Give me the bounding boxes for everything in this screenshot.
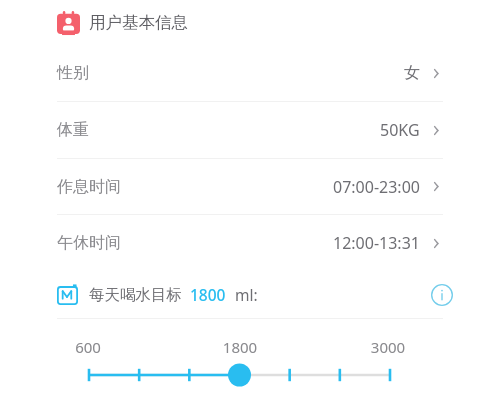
staticText: 1800 xyxy=(213,337,267,357)
button[interactable]: 每天喝水目标 xyxy=(0,271,501,318)
button[interactable]: 午休时间 xyxy=(0,215,501,271)
staticText: 1800 xyxy=(190,284,226,305)
staticText: 性别 xyxy=(57,63,89,83)
staticText: 3000 xyxy=(361,337,415,357)
staticText: 体重 xyxy=(57,120,89,140)
staticText: 女 xyxy=(404,63,420,83)
button[interactable]: 作息时间 xyxy=(0,159,501,214)
button[interactable]: 体重 xyxy=(0,102,501,158)
staticText: 07:00-23:00 xyxy=(333,176,420,198)
staticText: 作息时间 xyxy=(57,177,121,197)
staticText: 12:00-13:31 xyxy=(333,232,420,254)
staticText: 每天喝水目标 xyxy=(89,285,182,305)
staticText: 午休时间 xyxy=(57,233,121,253)
staticText: 用户基本信息 xyxy=(89,12,188,33)
staticText: ml: xyxy=(235,284,258,305)
staticText: 50KG xyxy=(380,119,420,141)
button[interactable]: Information about water goal xyxy=(429,282,455,308)
staticText: 600 xyxy=(63,337,113,357)
button[interactable]: 性别 xyxy=(0,45,501,101)
button[interactable]: Daily water goal slider xyxy=(0,363,501,387)
